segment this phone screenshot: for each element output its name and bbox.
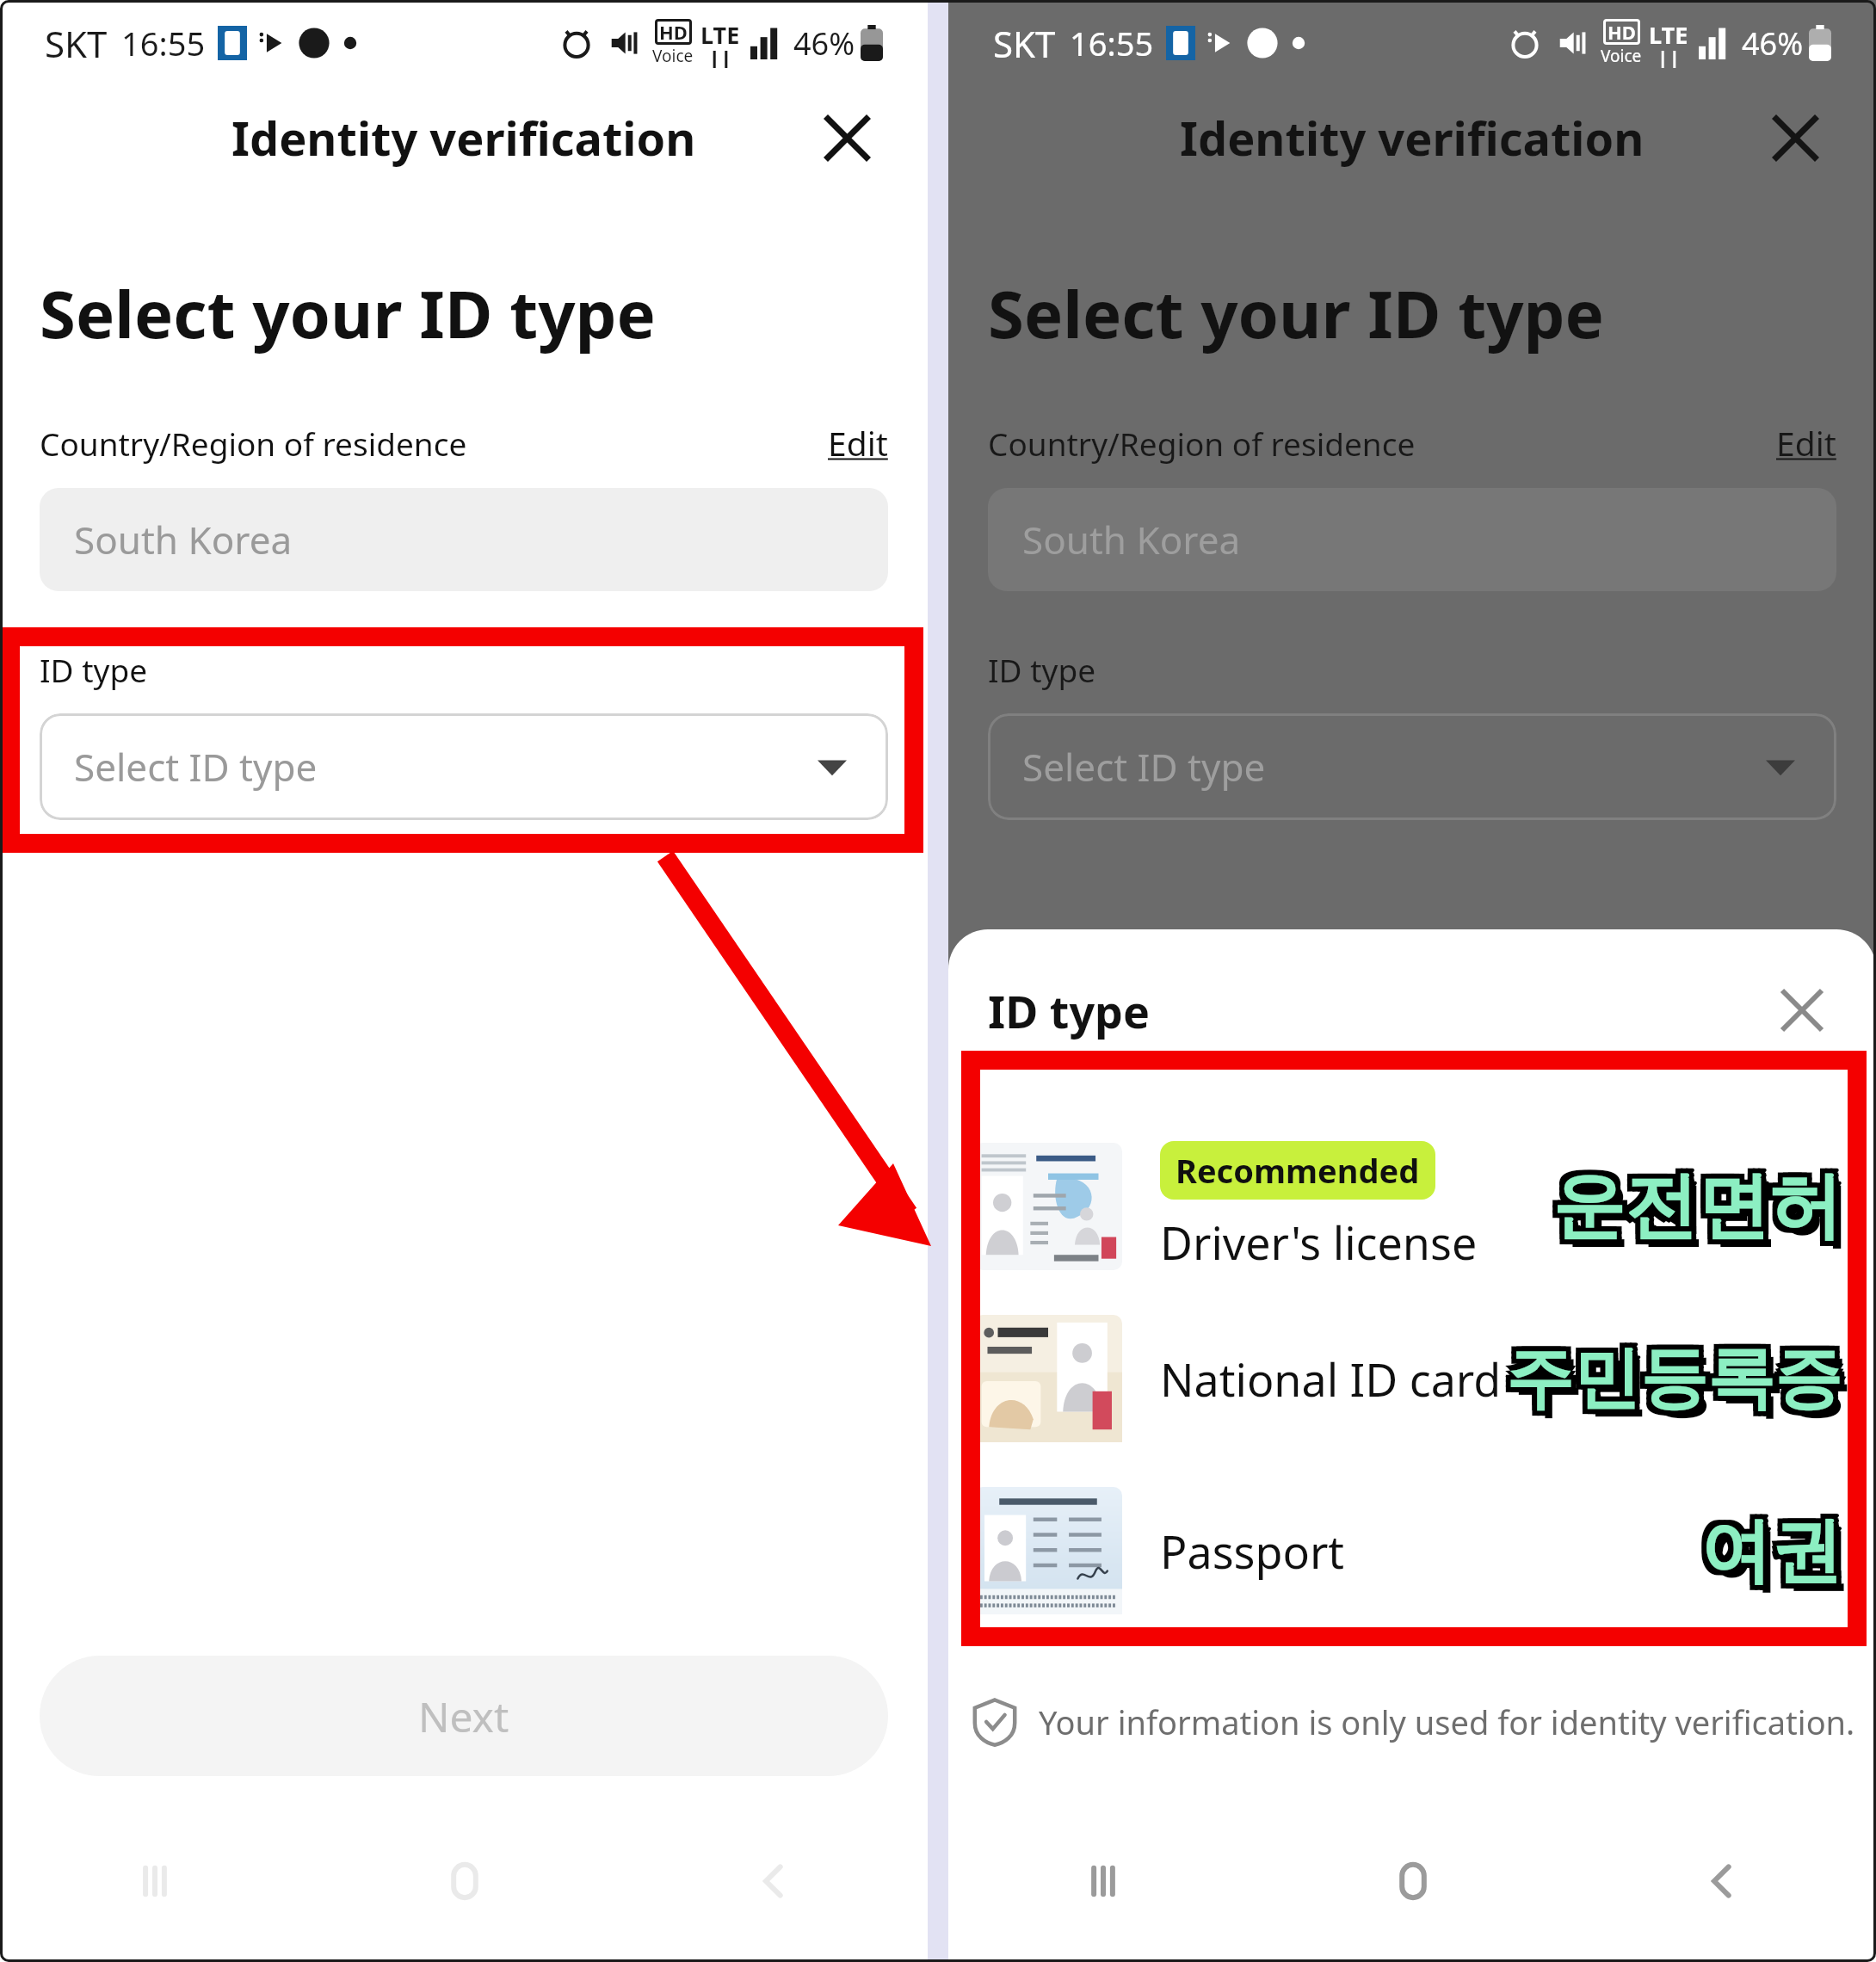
staticText: 운전면허 (1558, 1166, 1847, 1257)
button[interactable]: Back (1567, 1829, 1876, 1933)
button[interactable]: Recents (948, 1829, 1258, 1933)
staticText: 주민등록증 (1506, 1331, 1842, 1416)
staticText: 여권 (1695, 1502, 1836, 1590)
staticText: 주민등록증 (1514, 1344, 1849, 1428)
staticText: 운전면허 (1552, 1166, 1842, 1257)
staticText: Voice (1601, 45, 1642, 67)
staticText: Edit (828, 420, 888, 466)
staticText: Driver's license (1160, 1212, 1478, 1273)
staticText: 주민등록증 (1511, 1331, 1847, 1416)
staticText: 16:55 (1070, 21, 1154, 65)
staticText: Select ID type (1022, 741, 1266, 793)
staticText: SKT (45, 19, 108, 68)
staticText: Your information is only used for identi… (1039, 1700, 1855, 1744)
button[interactable]: Home (1258, 1829, 1567, 1933)
staticText: 여권 (1708, 1515, 1849, 1603)
button[interactable]: Close (1754, 96, 1836, 179)
staticText: 운전면허 (1547, 1166, 1836, 1257)
staticText: 운전면허 (1558, 1161, 1847, 1252)
staticText: 주민등록증 (1501, 1342, 1836, 1426)
staticText: Next (418, 1688, 509, 1744)
staticText: LTE (700, 19, 740, 51)
staticText: Passport (1160, 1521, 1345, 1582)
staticText: 여권 (1706, 1507, 1847, 1595)
staticText: 운전면허 (1547, 1161, 1836, 1252)
staticText: 운전면허 (1560, 1169, 1849, 1260)
button[interactable]: National ID card (948, 1293, 1876, 1465)
button[interactable]: Select ID type (40, 713, 888, 820)
staticText: 16:55 (121, 21, 206, 65)
button[interactable]: Close (805, 96, 888, 179)
staticText: 46% (793, 22, 855, 65)
staticText: 운전면허 (1552, 1161, 1842, 1252)
staticText: 46% (1742, 22, 1804, 65)
button[interactable]: Edit (828, 420, 888, 466)
staticText: 운전면허 (1558, 1156, 1847, 1247)
staticText: 여권 (1695, 1512, 1836, 1601)
staticText: HD (1608, 19, 1636, 45)
button[interactable]: South Korea (40, 488, 888, 591)
staticText: Recommended (1176, 1148, 1420, 1193)
staticText: Select ID type (74, 741, 318, 793)
staticText: Edit (1776, 420, 1836, 466)
staticText: 운전면허 (1547, 1156, 1836, 1247)
staticText: 여권 (1700, 1512, 1842, 1601)
staticText: ID type (988, 648, 1096, 691)
staticText: LTE (1649, 19, 1688, 51)
staticText: ID type (40, 648, 148, 691)
staticText: Select your ID type (40, 268, 656, 358)
staticText: 주민등록증 (1506, 1342, 1842, 1426)
button[interactable]: Close ID type sheet (1762, 971, 1842, 1050)
staticText: 운전면허 (1552, 1156, 1842, 1247)
staticText: 주민등록증 (1506, 1336, 1842, 1421)
staticText: HD (659, 19, 688, 45)
button[interactable]: Recommended (948, 1120, 1876, 1293)
staticText: 여권 (1706, 1502, 1847, 1590)
staticText: 여권 (1695, 1507, 1836, 1595)
staticText: South Korea (1022, 514, 1241, 565)
staticText: SKT (993, 19, 1056, 68)
staticText: Select your ID type (988, 268, 1604, 358)
staticText: National ID card (1160, 1348, 1502, 1410)
button[interactable]: Passport (948, 1465, 1876, 1637)
staticText: 주민등록증 (1511, 1336, 1847, 1421)
staticText: South Korea (74, 514, 293, 565)
button[interactable]: Recents (0, 1829, 310, 1933)
staticText: 주민등록증 (1501, 1336, 1836, 1421)
staticText: 주민등록증 (1511, 1342, 1847, 1426)
staticText: 주민등록증 (1501, 1331, 1836, 1416)
staticText: ID type (988, 980, 1150, 1041)
staticText: Identity verification (231, 106, 696, 170)
staticText: Identity verification (1180, 106, 1645, 170)
staticText: Voice (652, 45, 694, 67)
staticText: 여권 (1706, 1512, 1847, 1601)
staticText: 여권 (1700, 1507, 1842, 1595)
button[interactable]: Next (40, 1656, 888, 1776)
staticText: 여권 (1700, 1502, 1842, 1590)
staticText: Country/Region of residence (988, 422, 1416, 465)
staticText: Country/Region of residence (40, 422, 467, 465)
